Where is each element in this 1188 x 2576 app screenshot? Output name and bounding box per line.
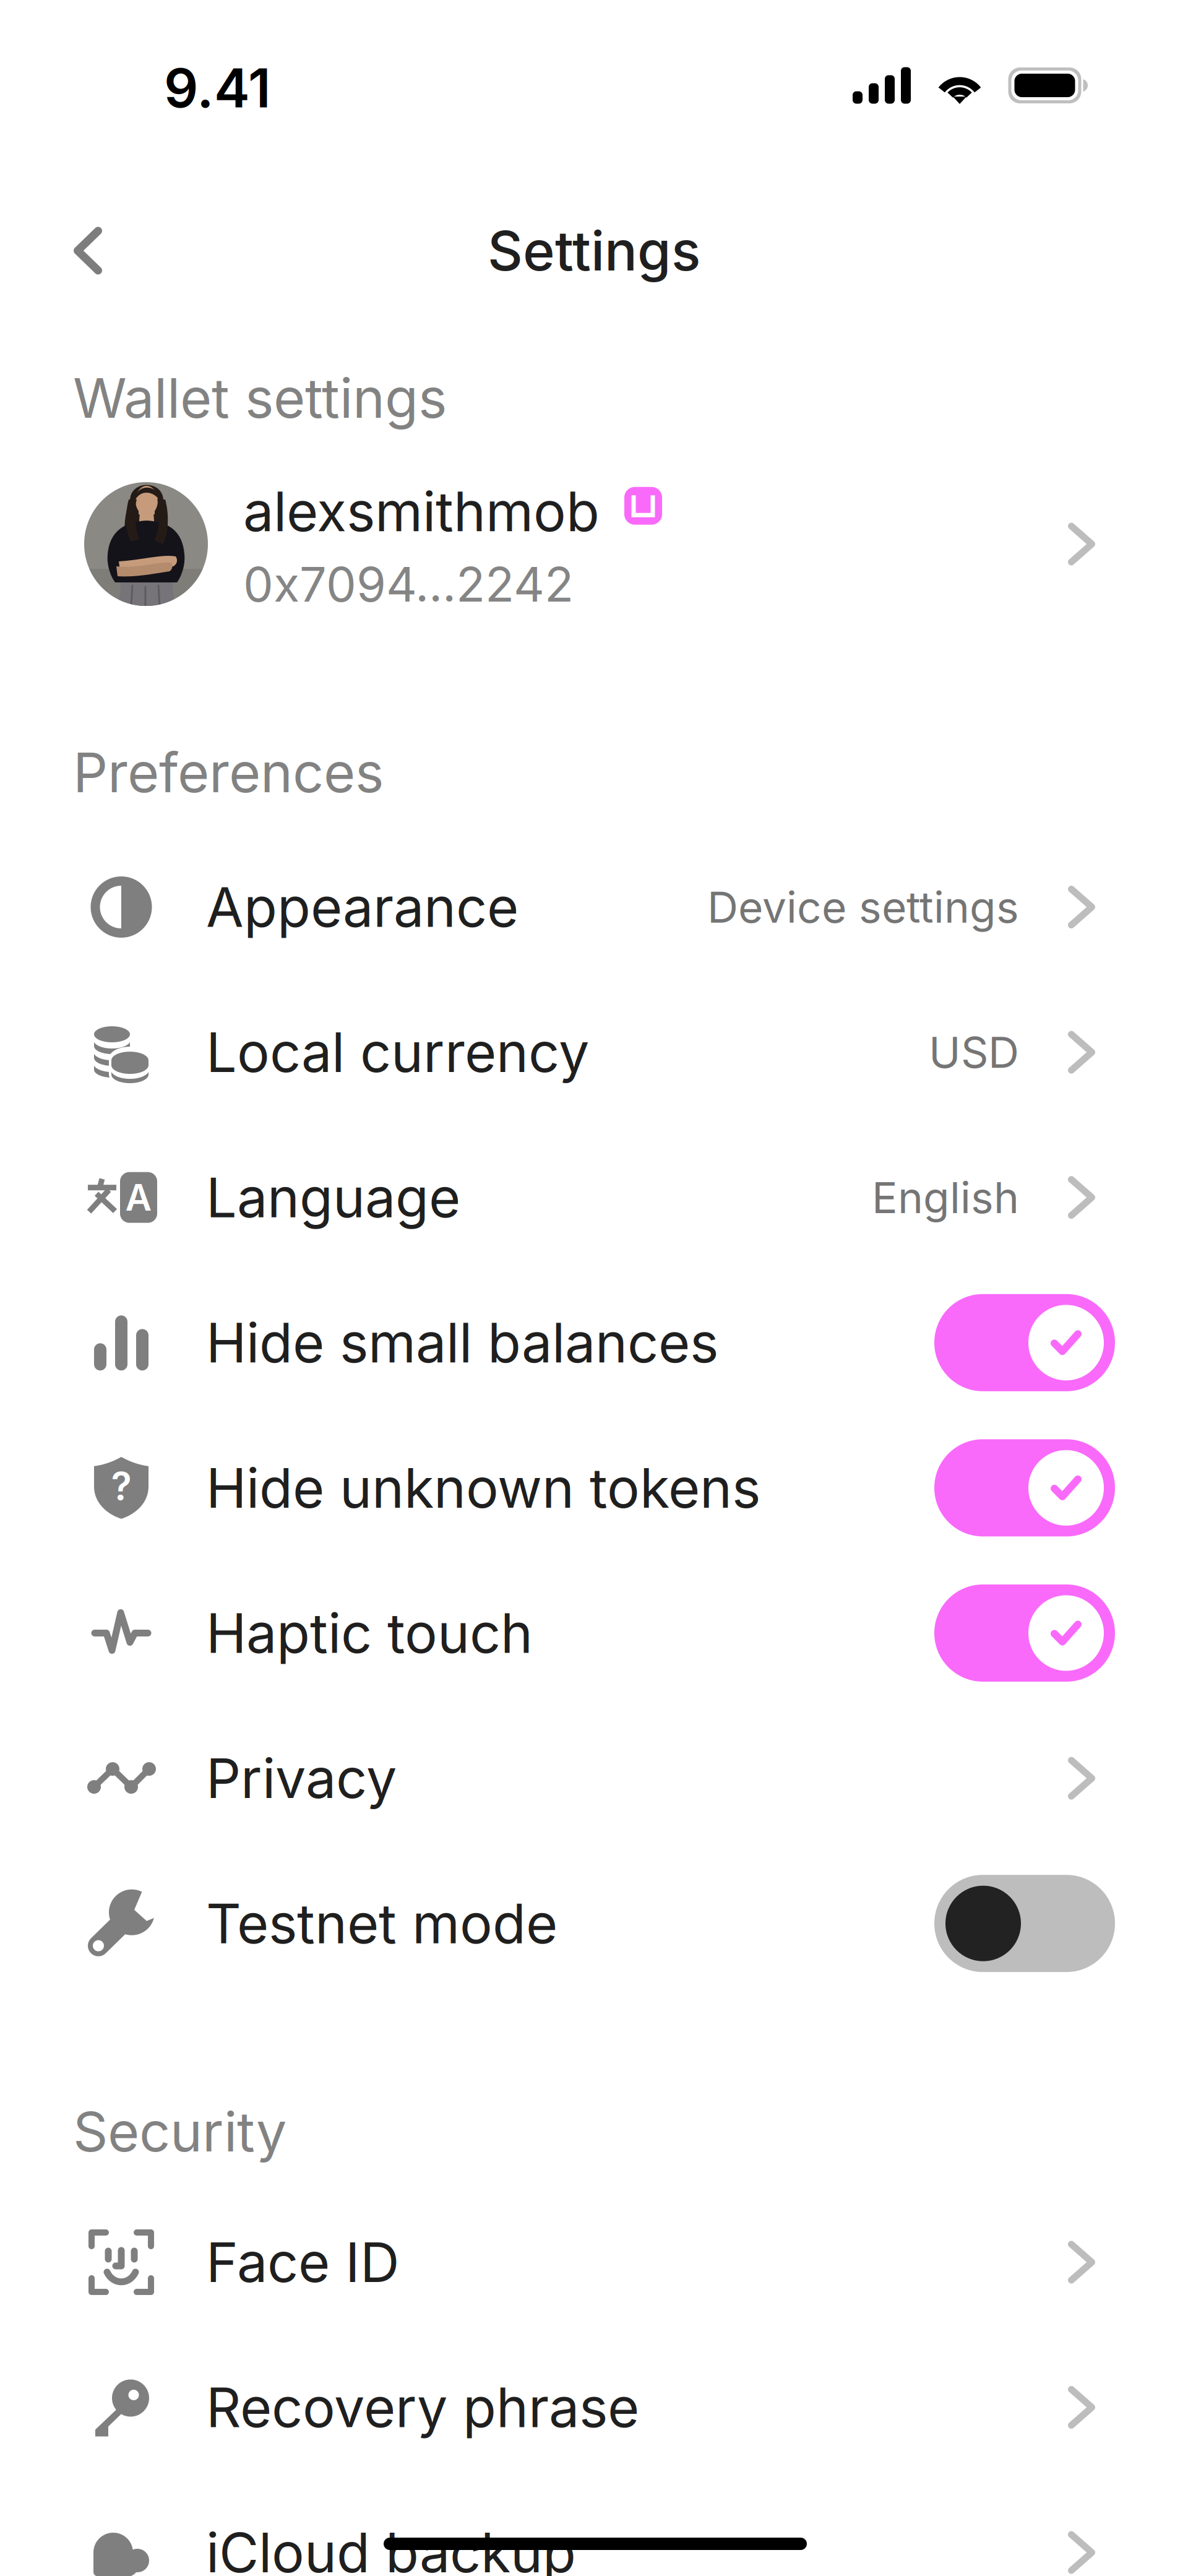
staticText: Haptic touch [206, 1600, 533, 1666]
staticText: ? [111, 1463, 131, 1509]
staticText: iCloud backup [206, 2520, 576, 2576]
staticText: Settings [488, 218, 700, 284]
staticText: Privacy [206, 1745, 397, 1811]
staticText: Wallet settings [73, 365, 447, 431]
staticText: 9.41 [164, 55, 271, 120]
staticText: Face ID [206, 2229, 400, 2295]
button[interactable]: alexsmithmob [0, 470, 1188, 618]
staticText: Appearance [206, 874, 519, 940]
staticText: USD [929, 1026, 1019, 1078]
staticText: Testnet mode [206, 1891, 557, 1956]
staticText: English [872, 1172, 1019, 1223]
staticText: Hide small balances [206, 1310, 718, 1376]
button[interactable]: iCloud backup [0, 2480, 1188, 2576]
button[interactable]: ? [0, 1415, 1188, 1560]
button[interactable]: Haptic touch [0, 1561, 1188, 1705]
staticText: 0x7094...2242 [243, 555, 574, 613]
staticText: Device settings [707, 881, 1019, 933]
button[interactable]: Appearance [0, 835, 1188, 979]
button[interactable]: Hide small balances [0, 1270, 1188, 1415]
staticText: Local currency [206, 1019, 589, 1085]
button[interactable]: Recovery phrase [0, 2335, 1188, 2480]
button[interactable]: Local currency [0, 980, 1188, 1125]
staticText: Security [73, 2099, 286, 2165]
button[interactable]: A [0, 1125, 1188, 1270]
staticText: Language [206, 1165, 460, 1230]
staticText: Recovery phrase [206, 2374, 639, 2440]
staticText: Preferences [73, 740, 384, 805]
button[interactable]: Back [38, 201, 137, 300]
button[interactable]: Face ID [0, 2190, 1188, 2335]
button[interactable]: Privacy [0, 1706, 1188, 1851]
staticText: alexsmithmob [243, 478, 600, 544]
staticText: A [125, 1175, 152, 1219]
button[interactable]: Testnet mode [0, 1851, 1188, 1996]
staticText: Hide unknown tokens [206, 1455, 760, 1521]
